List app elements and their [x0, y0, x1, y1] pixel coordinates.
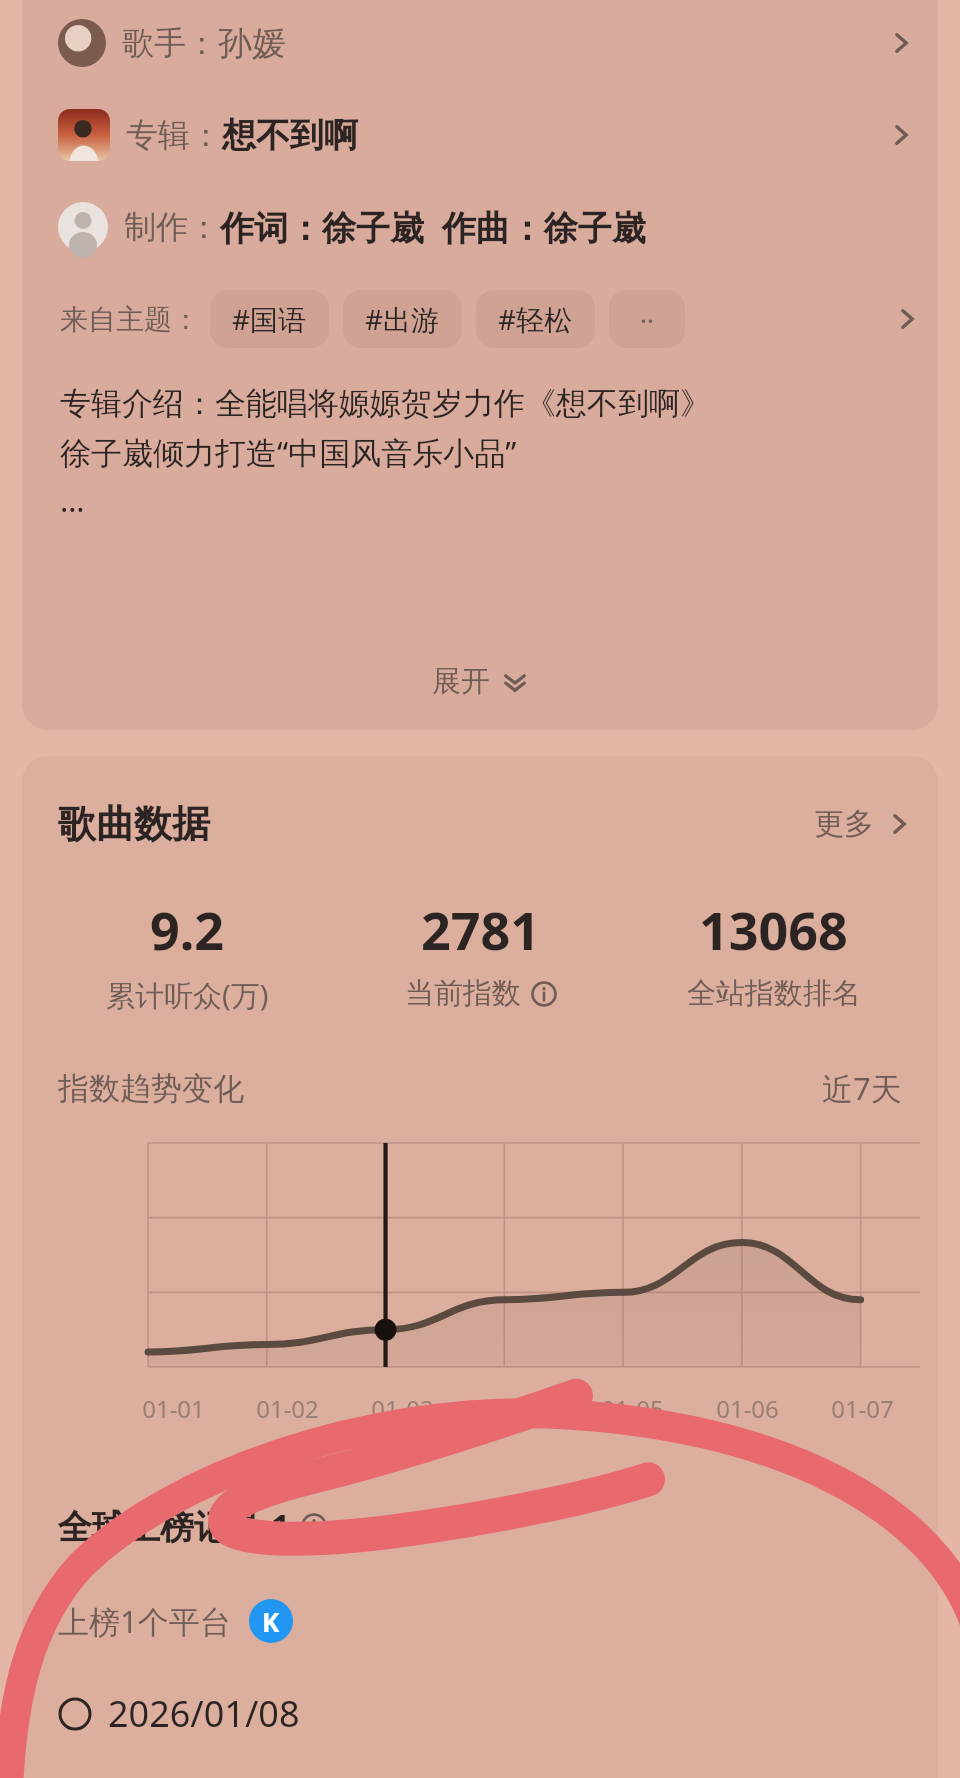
staticText: #轻松 [498, 300, 573, 338]
staticText: 歌手： [122, 23, 218, 63]
staticText: 专辑介绍：全能唱将嫄嫄贺岁力作《想不到啊》 [60, 384, 711, 423]
staticText: 01-04 [486, 1392, 549, 1425]
staticText: 01-06 [716, 1392, 779, 1425]
staticText: K [262, 1604, 280, 1639]
button[interactable]: 专辑： [22, 98, 938, 172]
button[interactable]: 13068 [627, 894, 920, 1012]
button[interactable]: 制作： [22, 190, 938, 264]
staticText: 01-07 [831, 1392, 894, 1425]
button[interactable]: #轻松 [476, 290, 595, 348]
staticText: 展开 [432, 663, 490, 700]
staticText: 全球上榜记录 1 [58, 1503, 291, 1549]
staticText: 累计听众(万) [106, 975, 269, 1015]
staticText: 来自主题： [60, 302, 200, 337]
staticText: 作词：徐子崴 作曲：徐子崴 [220, 204, 646, 250]
button[interactable]: #出游 [343, 290, 462, 348]
staticText: 01-01 [142, 1392, 205, 1425]
staticText: 近7天 [822, 1067, 902, 1109]
staticText: 更多 [814, 805, 874, 843]
staticText: 13068 [699, 894, 848, 965]
staticText: 孙媛 [218, 22, 286, 65]
staticText: 9.2 [150, 894, 225, 965]
staticText: 制作： [124, 207, 220, 247]
button[interactable]: #国语 [210, 290, 329, 348]
staticText: #国语 [232, 300, 307, 338]
staticText: 想不到啊 [222, 114, 358, 157]
staticText: ·· [640, 302, 654, 337]
staticText: 2781 [421, 894, 540, 965]
button[interactable]: 2781 [334, 894, 627, 1012]
staticText: 指数趋势变化 [58, 1069, 244, 1108]
staticText: 2026/01/08 [108, 1689, 300, 1738]
staticText: 01-02 [256, 1392, 319, 1425]
button[interactable]: 9.2 [40, 894, 334, 1015]
button[interactable]: 更多主题 [609, 290, 685, 348]
button[interactable]: 展开 [22, 638, 938, 724]
staticText: 专辑： [126, 115, 222, 155]
staticText: 上榜1个平台 [58, 1600, 231, 1642]
staticText: … [60, 479, 85, 521]
staticText: #出游 [365, 300, 440, 338]
button[interactable]: 歌手： [22, 6, 938, 80]
staticText: 01-03 [371, 1392, 434, 1425]
button[interactable]: 全球上榜记录 1 [58, 1503, 938, 1549]
button[interactable]: 更多 [814, 805, 912, 843]
staticText: 01-05 [601, 1392, 664, 1425]
staticText: 歌曲数据 [58, 800, 210, 848]
staticText: 徐子崴倾力打造“中国风音乐小品” [60, 431, 517, 473]
staticText: 当前指数 [405, 975, 521, 1012]
staticText: 全站指数排名 [687, 975, 861, 1012]
